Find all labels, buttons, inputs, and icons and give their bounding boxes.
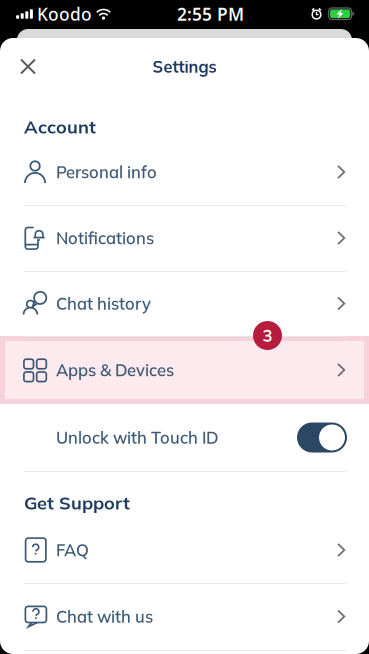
staticText: Settings: [152, 56, 216, 77]
button[interactable]: Unlock with Touch ID: [0, 404, 369, 471]
staticText: 3: [262, 325, 272, 346]
staticText: 2:55 PM: [177, 2, 244, 25]
button[interactable]: Chat with us: [0, 583, 369, 650]
staticText: Chat history: [56, 293, 151, 314]
button[interactable]: Personal info: [0, 139, 369, 205]
staticText: Apps & Devices: [56, 360, 174, 380]
button[interactable]: Notifications: [0, 205, 369, 271]
staticText: Get Support: [24, 491, 130, 514]
staticText: Unlock with Touch ID: [56, 427, 218, 448]
button[interactable]: FAQ: [0, 517, 369, 583]
staticText: Personal info: [56, 162, 157, 182]
staticText: Chat with us: [56, 606, 153, 627]
button[interactable]: Close: [6, 44, 50, 88]
staticText: FAQ: [56, 540, 89, 560]
staticText: Notifications: [56, 228, 154, 248]
staticText: Account: [24, 115, 96, 138]
staticText: Koodo: [37, 2, 92, 25]
button[interactable]: Apps & Devices: [0, 336, 369, 404]
button[interactable]: Chat history: [0, 271, 369, 336]
